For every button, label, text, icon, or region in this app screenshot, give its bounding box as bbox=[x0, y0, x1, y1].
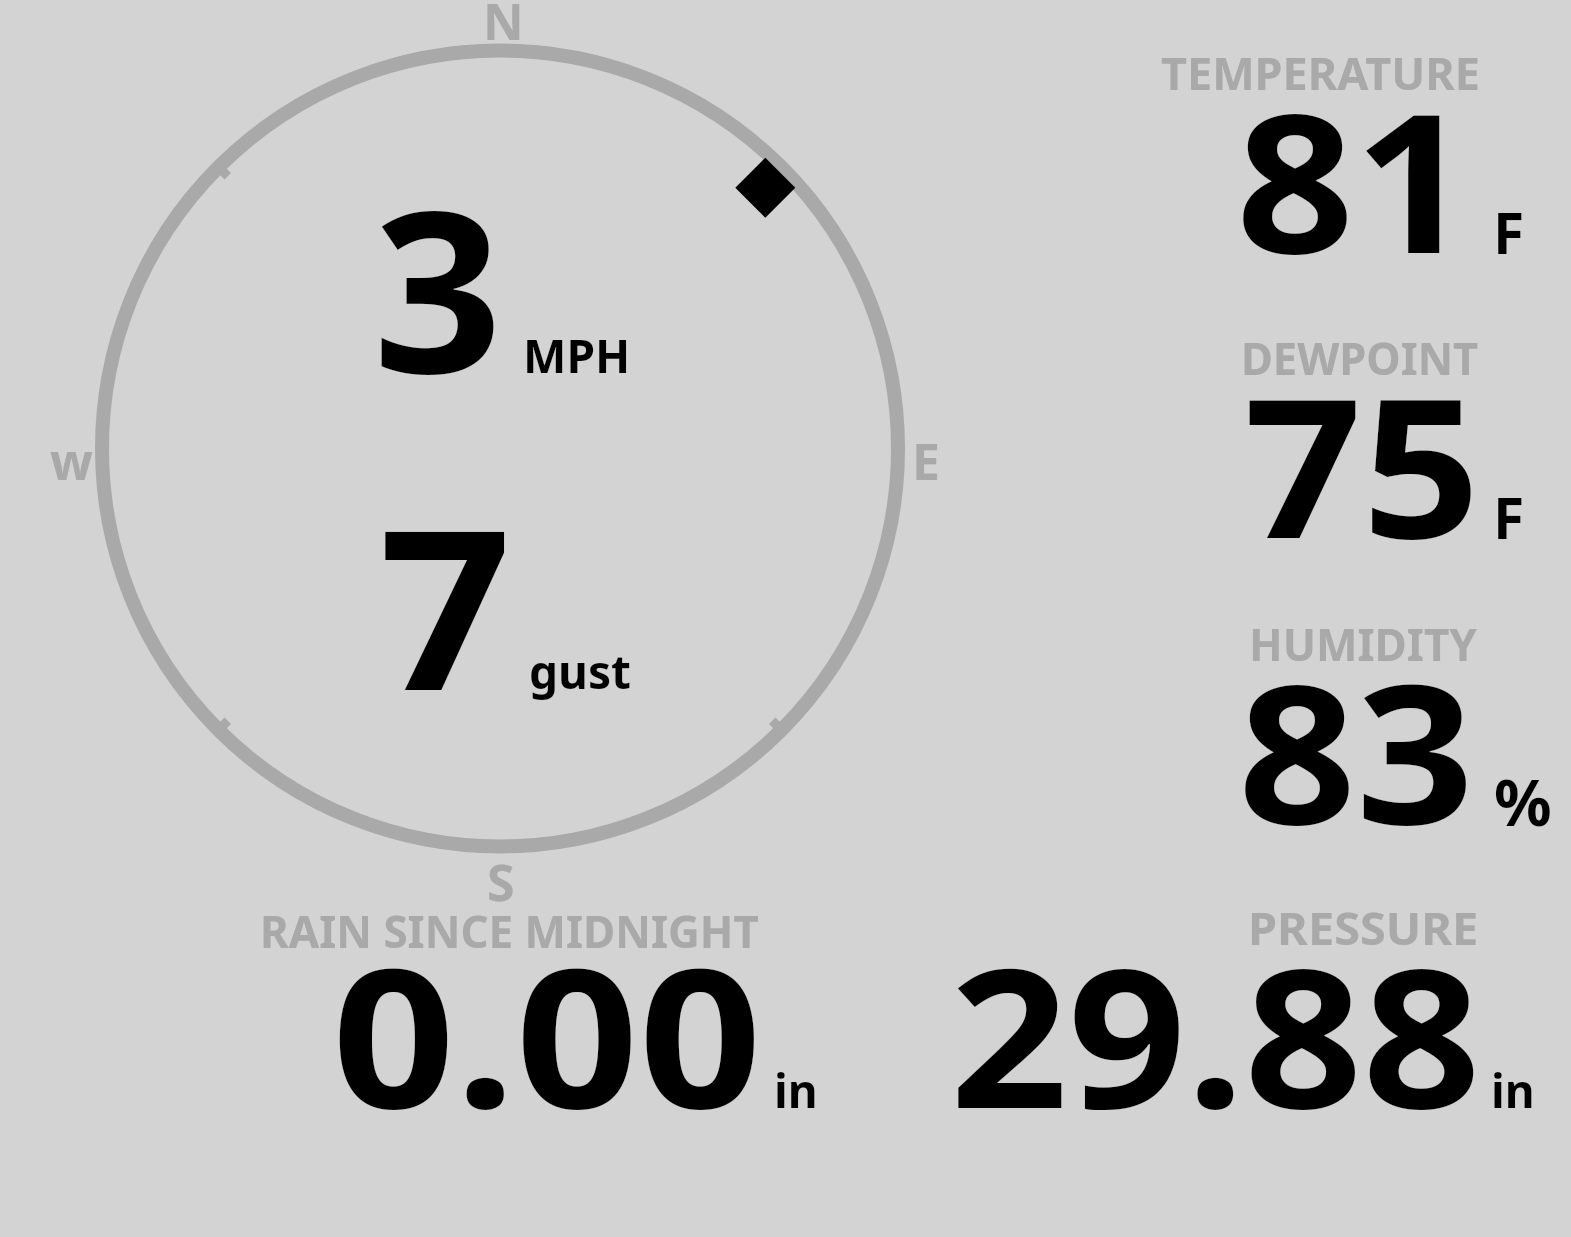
staticText: DEWPOINT bbox=[1241, 327, 1479, 388]
button[interactable]: Temperature 81 degrees Fahrenheit bbox=[1120, 40, 1571, 270]
staticText: 29.88 bbox=[950, 902, 1481, 1165]
button[interactable]: Pressure 29.88 inches bbox=[930, 900, 1550, 1130]
button[interactable]: Rain since midnight 0.00 inches bbox=[240, 900, 840, 1130]
staticText: PRESSURE bbox=[1248, 897, 1478, 958]
button[interactable]: Humidity 83 percent bbox=[1120, 610, 1571, 840]
staticText: TEMPERATURE bbox=[1161, 42, 1480, 103]
staticText: 81 bbox=[1236, 47, 1472, 310]
staticText: N bbox=[483, 0, 524, 55]
staticText: MPH bbox=[523, 324, 631, 387]
staticText: 7 bbox=[379, 454, 512, 755]
staticText: in bbox=[774, 1059, 818, 1122]
staticText: F bbox=[1493, 478, 1525, 556]
staticText: E bbox=[912, 427, 940, 495]
staticText: HUMIDITY bbox=[1249, 613, 1477, 674]
staticText: 0.00 bbox=[332, 902, 762, 1165]
staticText: RAIN SINCE MIDNIGHT bbox=[260, 900, 760, 961]
staticText: S bbox=[487, 848, 515, 916]
staticText: 75 bbox=[1244, 332, 1480, 595]
button[interactable]: Wind 3 miles per hour, gusting 7, north-… bbox=[60, 20, 950, 890]
staticText: F bbox=[1493, 193, 1525, 271]
staticText: w bbox=[50, 427, 93, 495]
button[interactable]: Dewpoint 75 degrees Fahrenheit bbox=[1120, 325, 1571, 555]
staticText: 3 bbox=[373, 136, 502, 438]
staticText: % bbox=[1494, 758, 1552, 845]
staticText: in bbox=[1491, 1059, 1535, 1122]
staticText: gust bbox=[529, 640, 632, 703]
staticText: 83 bbox=[1238, 618, 1474, 881]
